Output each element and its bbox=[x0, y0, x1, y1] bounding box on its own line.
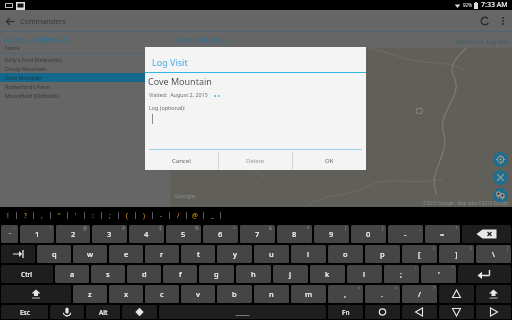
button[interactable]: \ bbox=[476, 245, 511, 263]
staticText: ] bbox=[455, 249, 458, 259]
button[interactable]: h bbox=[236, 265, 271, 283]
button[interactable]: _ bbox=[204, 207, 220, 224]
button[interactable]: k bbox=[310, 265, 345, 283]
button[interactable]: Rutherford's Farm bbox=[0, 82, 170, 91]
button[interactable]: q bbox=[37, 245, 71, 263]
other: Tab bbox=[1, 245, 35, 263]
button[interactable]: More options bbox=[494, 12, 512, 30]
button[interactable]: v bbox=[181, 285, 215, 303]
button[interactable]: Averell, William W. bbox=[4, 34, 70, 44]
button[interactable]: l bbox=[347, 265, 382, 283]
button[interactable]: Up bbox=[439, 285, 474, 303]
button[interactable]: = bbox=[425, 225, 460, 243]
button[interactable]: [ bbox=[402, 245, 437, 263]
button[interactable]: Ctrl bbox=[1, 265, 53, 283]
button[interactable]: c bbox=[145, 285, 179, 303]
button[interactable]: @ bbox=[187, 207, 203, 224]
button[interactable]: a bbox=[55, 265, 89, 283]
button[interactable]: 4 bbox=[129, 225, 164, 243]
button[interactable]: g bbox=[199, 265, 234, 283]
button[interactable]: b bbox=[217, 285, 252, 303]
button[interactable]: 2 bbox=[56, 225, 90, 243]
button[interactable]: Down bbox=[439, 305, 474, 319]
button[interactable]: 5 bbox=[166, 225, 201, 243]
button[interactable]: 7 bbox=[240, 225, 275, 243]
button[interactable]: ] bbox=[439, 245, 474, 263]
other: Space bbox=[159, 305, 326, 319]
button[interactable]: ' bbox=[421, 265, 456, 283]
button[interactable]: ! bbox=[0, 207, 16, 224]
button[interactable]: n bbox=[254, 285, 289, 303]
button[interactable]: . bbox=[365, 285, 400, 303]
button[interactable]: ( bbox=[119, 207, 135, 224]
button[interactable]: j bbox=[273, 265, 308, 283]
button[interactable]: Cancel bbox=[145, 152, 218, 170]
button[interactable]: m bbox=[291, 285, 326, 303]
button[interactable]: 1 bbox=[20, 225, 54, 243]
button[interactable]: p bbox=[365, 245, 400, 263]
button[interactable]: t bbox=[181, 245, 215, 263]
button[interactable]: 6 bbox=[203, 225, 238, 243]
button[interactable]: 0 bbox=[351, 225, 386, 243]
button[interactable]: r bbox=[145, 245, 179, 263]
button[interactable]: / bbox=[402, 285, 437, 303]
button[interactable]: Cove Mountain bbox=[175, 34, 229, 44]
button[interactable]: Left bbox=[402, 305, 437, 319]
button[interactable]: ` bbox=[1, 225, 18, 243]
button[interactable]: Kelly's Ford (Kellysville) bbox=[0, 55, 170, 64]
button[interactable]: 8 bbox=[277, 225, 312, 243]
button[interactable]: ? bbox=[17, 207, 33, 224]
button[interactable]: Esc bbox=[1, 305, 48, 319]
button[interactable]: Enter bbox=[458, 265, 511, 283]
button[interactable]: y bbox=[217, 245, 252, 263]
button[interactable]: Fn bbox=[328, 305, 363, 319]
button[interactable]: Moorefield (Oldfields) bbox=[0, 91, 170, 100]
button[interactable]: , bbox=[328, 285, 363, 303]
button[interactable]: Home bbox=[365, 305, 400, 319]
button[interactable]: i bbox=[291, 245, 326, 263]
button[interactable]: Cove Mountain bbox=[0, 73, 170, 82]
button[interactable]: , bbox=[34, 207, 50, 224]
button[interactable]: 3 bbox=[92, 225, 127, 243]
button[interactable]: Back bbox=[4, 15, 16, 27]
button[interactable]: u bbox=[254, 245, 289, 263]
staticText: % bbox=[195, 225, 199, 231]
button[interactable]: Backspace bbox=[462, 225, 511, 243]
button[interactable]: d bbox=[127, 265, 161, 283]
button[interactable]: Log Visit bbox=[487, 38, 508, 45]
button[interactable]: : bbox=[85, 207, 101, 224]
button[interactable]: Close bbox=[493, 170, 508, 185]
button[interactable]: w bbox=[73, 245, 107, 263]
button[interactable]: Show places bbox=[493, 188, 508, 203]
button[interactable]: Droop Mountain bbox=[0, 64, 170, 73]
button[interactable]: ; bbox=[384, 265, 419, 283]
button[interactable]: Refresh bbox=[476, 12, 494, 30]
button[interactable]: Right bbox=[476, 305, 511, 319]
button[interactable]: Voice input bbox=[50, 305, 84, 319]
button[interactable]: - bbox=[388, 225, 423, 243]
button[interactable]: OK bbox=[293, 152, 366, 170]
button[interactable]: Delete bbox=[219, 152, 292, 170]
button[interactable]: ' bbox=[68, 207, 84, 224]
button[interactable]: ; bbox=[102, 207, 118, 224]
button[interactable]: f bbox=[163, 265, 197, 283]
button[interactable]: z bbox=[73, 285, 107, 303]
button[interactable]: / bbox=[170, 207, 186, 224]
button[interactable]: ) bbox=[136, 207, 152, 224]
button[interactable]: Alt bbox=[86, 305, 120, 319]
button[interactable]: Change date bbox=[212, 89, 222, 98]
button[interactable]: Space bbox=[159, 305, 326, 319]
button[interactable]: " bbox=[51, 207, 67, 224]
button[interactable]: 9 bbox=[314, 225, 349, 243]
button[interactable]: My location bbox=[493, 152, 508, 167]
button[interactable]: Shift bbox=[1, 285, 71, 303]
button[interactable]: Add to List bbox=[457, 38, 484, 45]
button[interactable]: e bbox=[109, 245, 143, 263]
button[interactable]: Tab bbox=[1, 245, 35, 263]
button[interactable]: Shift bbox=[476, 285, 511, 303]
button[interactable]: s bbox=[91, 265, 125, 283]
button[interactable]: o bbox=[328, 245, 363, 263]
button[interactable]: Symbols bbox=[122, 305, 157, 319]
button[interactable]: x bbox=[109, 285, 143, 303]
button[interactable]: - bbox=[153, 207, 169, 224]
